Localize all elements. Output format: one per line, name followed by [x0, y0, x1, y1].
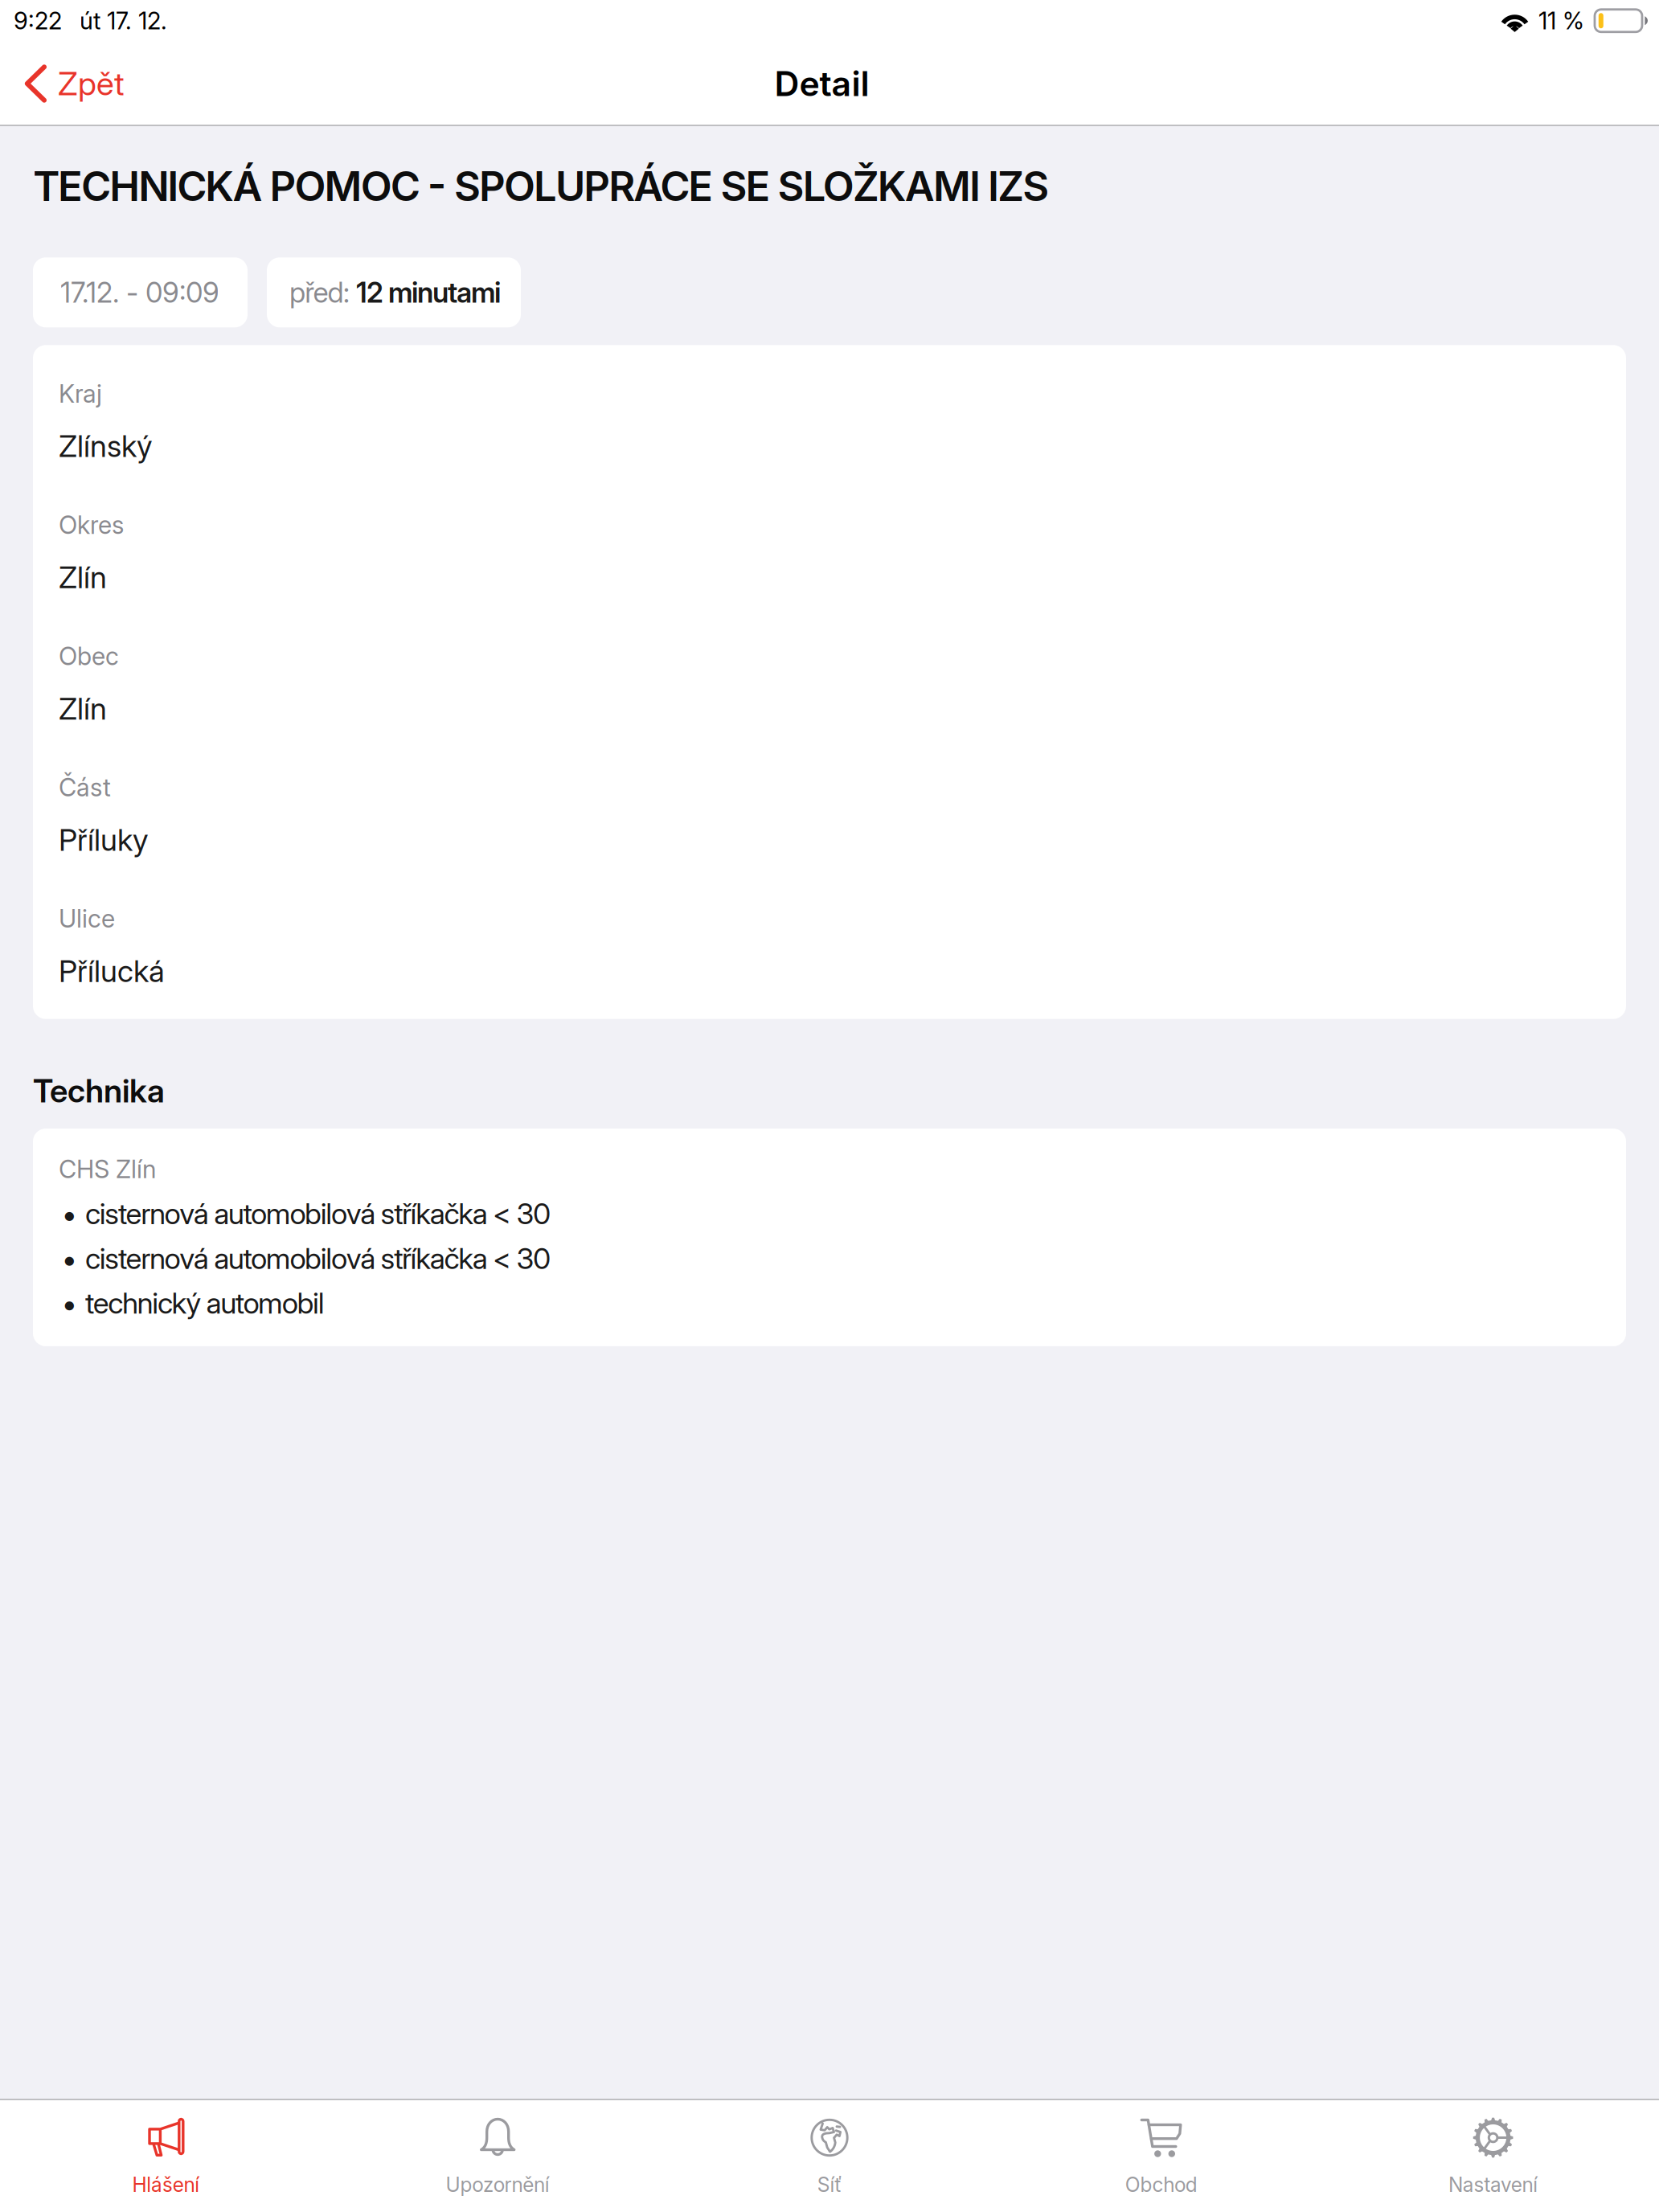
staticText: Nastavení: [1448, 2173, 1538, 2197]
staticText: CHS Zlín: [59, 1154, 156, 1184]
staticText: Hlášení: [132, 2173, 200, 2197]
staticText: 11 %: [1538, 6, 1584, 35]
staticText: Upozornění: [446, 2173, 550, 2197]
button[interactable]: Upozornění: [332, 2100, 664, 2212]
staticText: •: [62, 1285, 77, 1321]
staticText: Detail: [774, 63, 869, 104]
staticText: Zpět: [58, 64, 125, 103]
button[interactable]: Hlášení: [0, 2100, 332, 2212]
button[interactable]: Síť: [664, 2100, 995, 2212]
staticText: •: [62, 1241, 77, 1276]
staticText: •: [62, 1196, 77, 1231]
staticText: Kraj: [59, 379, 102, 409]
staticText: Zlínský: [59, 428, 153, 464]
button[interactable]: Obchod: [995, 2100, 1327, 2212]
button[interactable]: Zpět: [0, 50, 141, 125]
staticText: Síť: [817, 2173, 842, 2197]
staticText: Zlín: [59, 690, 107, 727]
button[interactable]: Nastavení: [1327, 2100, 1659, 2212]
staticText: Zlín: [59, 559, 107, 596]
staticText: Část: [59, 773, 111, 802]
staticText: TECHNICKÁ POMOC - SPOLUPRÁCE SE SLOŽKAMI…: [33, 162, 1049, 211]
staticText: Obec: [59, 641, 119, 671]
staticText: Okres: [59, 510, 124, 540]
staticText: 17.12. - 09:09: [60, 276, 219, 309]
staticText: Přílucká: [59, 953, 165, 989]
staticText: Příluky: [59, 822, 149, 858]
staticText: út 17. 12.: [80, 6, 167, 35]
staticText: technický automobil: [85, 1285, 324, 1321]
staticText: Ulice: [59, 904, 115, 934]
staticText: 9:22: [14, 6, 62, 35]
staticText: Obchod: [1125, 2173, 1197, 2197]
staticText: před:: [289, 276, 356, 309]
staticText: Technika: [33, 1071, 165, 1110]
staticText: 12 minutami: [356, 276, 501, 309]
staticText: cisternová automobilová stříkačka < 30: [85, 1241, 551, 1276]
staticText: cisternová automobilová stříkačka < 30: [85, 1196, 551, 1231]
